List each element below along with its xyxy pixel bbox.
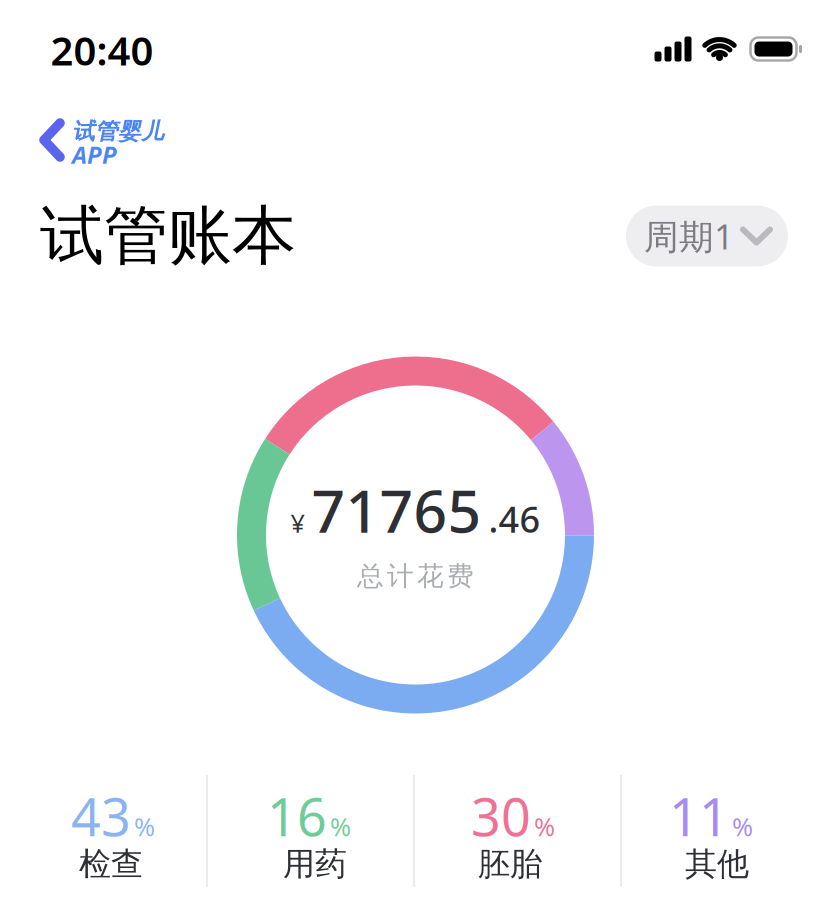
- staticText: 试管账本: [40, 197, 296, 275]
- staticText: 检查: [79, 844, 143, 884]
- staticText: 16: [267, 781, 327, 851]
- staticText: 71765: [311, 471, 481, 549]
- staticText: 试管婴儿: [72, 118, 164, 145]
- staticText: .46: [488, 495, 540, 543]
- staticText: %: [134, 809, 155, 843]
- staticText: 用药: [283, 844, 347, 884]
- button[interactable]: 返回: [44, 114, 164, 166]
- staticText: %: [330, 809, 351, 843]
- button[interactable]: 周期1: [626, 205, 788, 266]
- staticText: 43: [71, 781, 131, 851]
- staticText: ¥: [290, 506, 304, 540]
- staticText: 其他: [685, 844, 749, 884]
- staticText: 30: [471, 781, 531, 851]
- staticText: %: [732, 809, 753, 843]
- staticText: 总计花费: [357, 560, 474, 592]
- staticText: APP: [72, 138, 117, 170]
- staticText: %: [534, 809, 555, 843]
- staticText: 胚胎: [478, 844, 542, 884]
- staticText: 20:40: [50, 23, 153, 76]
- staticText: 周期1: [644, 213, 734, 259]
- staticText: 11: [669, 781, 729, 851]
